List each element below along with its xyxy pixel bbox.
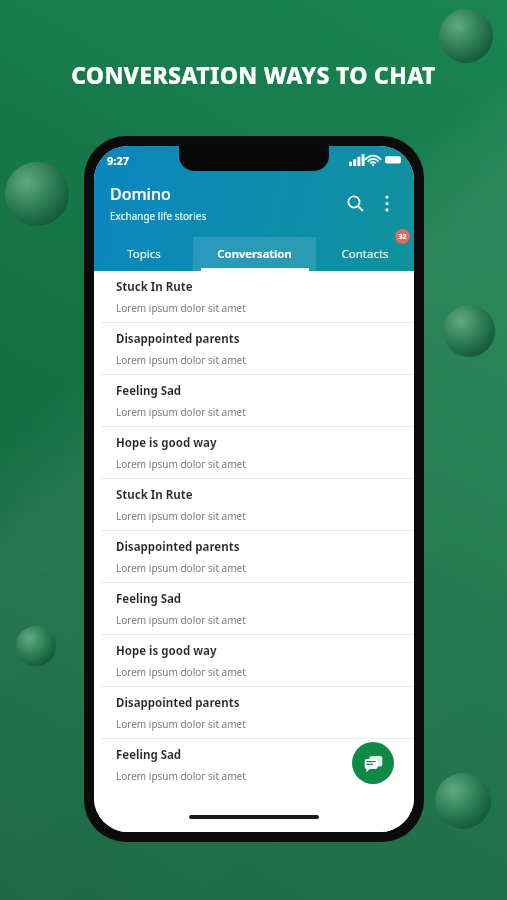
button[interactable]: Disappointed parents: [94, 687, 414, 738]
button[interactable]: Search: [338, 186, 372, 220]
button[interactable]: Contacts: [316, 237, 414, 271]
staticText: Lorem ipsum dolor sit amet: [116, 457, 246, 471]
staticText: Feeling Sad: [116, 383, 182, 399]
staticText: Topics: [127, 246, 161, 262]
staticText: Lorem ipsum dolor sit amet: [116, 353, 246, 367]
staticText: Lorem ipsum dolor sit amet: [116, 665, 246, 679]
button[interactable]: More options: [372, 188, 402, 218]
button[interactable]: Feeling Sad: [94, 375, 414, 426]
staticText: Lorem ipsum dolor sit amet: [116, 301, 246, 315]
button[interactable]: New message: [352, 742, 394, 784]
staticText: Feeling Sad: [116, 747, 182, 763]
staticText: 32: [398, 232, 407, 242]
staticText: CONVERSATION WAYS TO CHAT: [0, 59, 507, 90]
button[interactable]: Topics: [94, 237, 193, 271]
staticText: Domino: [110, 183, 171, 205]
staticText: Conversation: [217, 246, 292, 262]
staticText: Feeling Sad: [116, 591, 182, 607]
button[interactable]: Disappointed parents: [94, 323, 414, 374]
staticText: Disappointed parents: [116, 331, 240, 347]
staticText: Lorem ipsum dolor sit amet: [116, 509, 246, 523]
button[interactable]: Disappointed parents: [94, 531, 414, 582]
staticText: Exchange life stories: [110, 209, 207, 223]
staticText: Lorem ipsum dolor sit amet: [116, 613, 246, 627]
staticText: Contacts: [341, 246, 389, 262]
staticText: Lorem ipsum dolor sit amet: [116, 405, 246, 419]
staticText: Stuck In Rute: [116, 279, 193, 295]
staticText: Disappointed parents: [116, 539, 240, 555]
button[interactable]: Conversation: [193, 237, 316, 271]
button[interactable]: Feeling Sad: [94, 583, 414, 634]
staticText: Lorem ipsum dolor sit amet: [116, 769, 246, 783]
button[interactable]: Feeling Sad: [94, 739, 414, 790]
button[interactable]: Stuck In Rute: [94, 271, 414, 322]
button[interactable]: Hope is good way: [94, 635, 414, 686]
staticText: Hope is good way: [116, 643, 217, 659]
staticText: Lorem ipsum dolor sit amet: [116, 561, 246, 575]
staticText: 9:27: [107, 153, 129, 168]
button[interactable]: Hope is good way: [94, 427, 414, 478]
staticText: Stuck In Rute: [116, 487, 193, 503]
staticText: Hope is good way: [116, 435, 217, 451]
button[interactable]: Stuck In Rute: [94, 479, 414, 530]
staticText: Disappointed parents: [116, 695, 240, 711]
staticText: Lorem ipsum dolor sit amet: [116, 717, 246, 731]
